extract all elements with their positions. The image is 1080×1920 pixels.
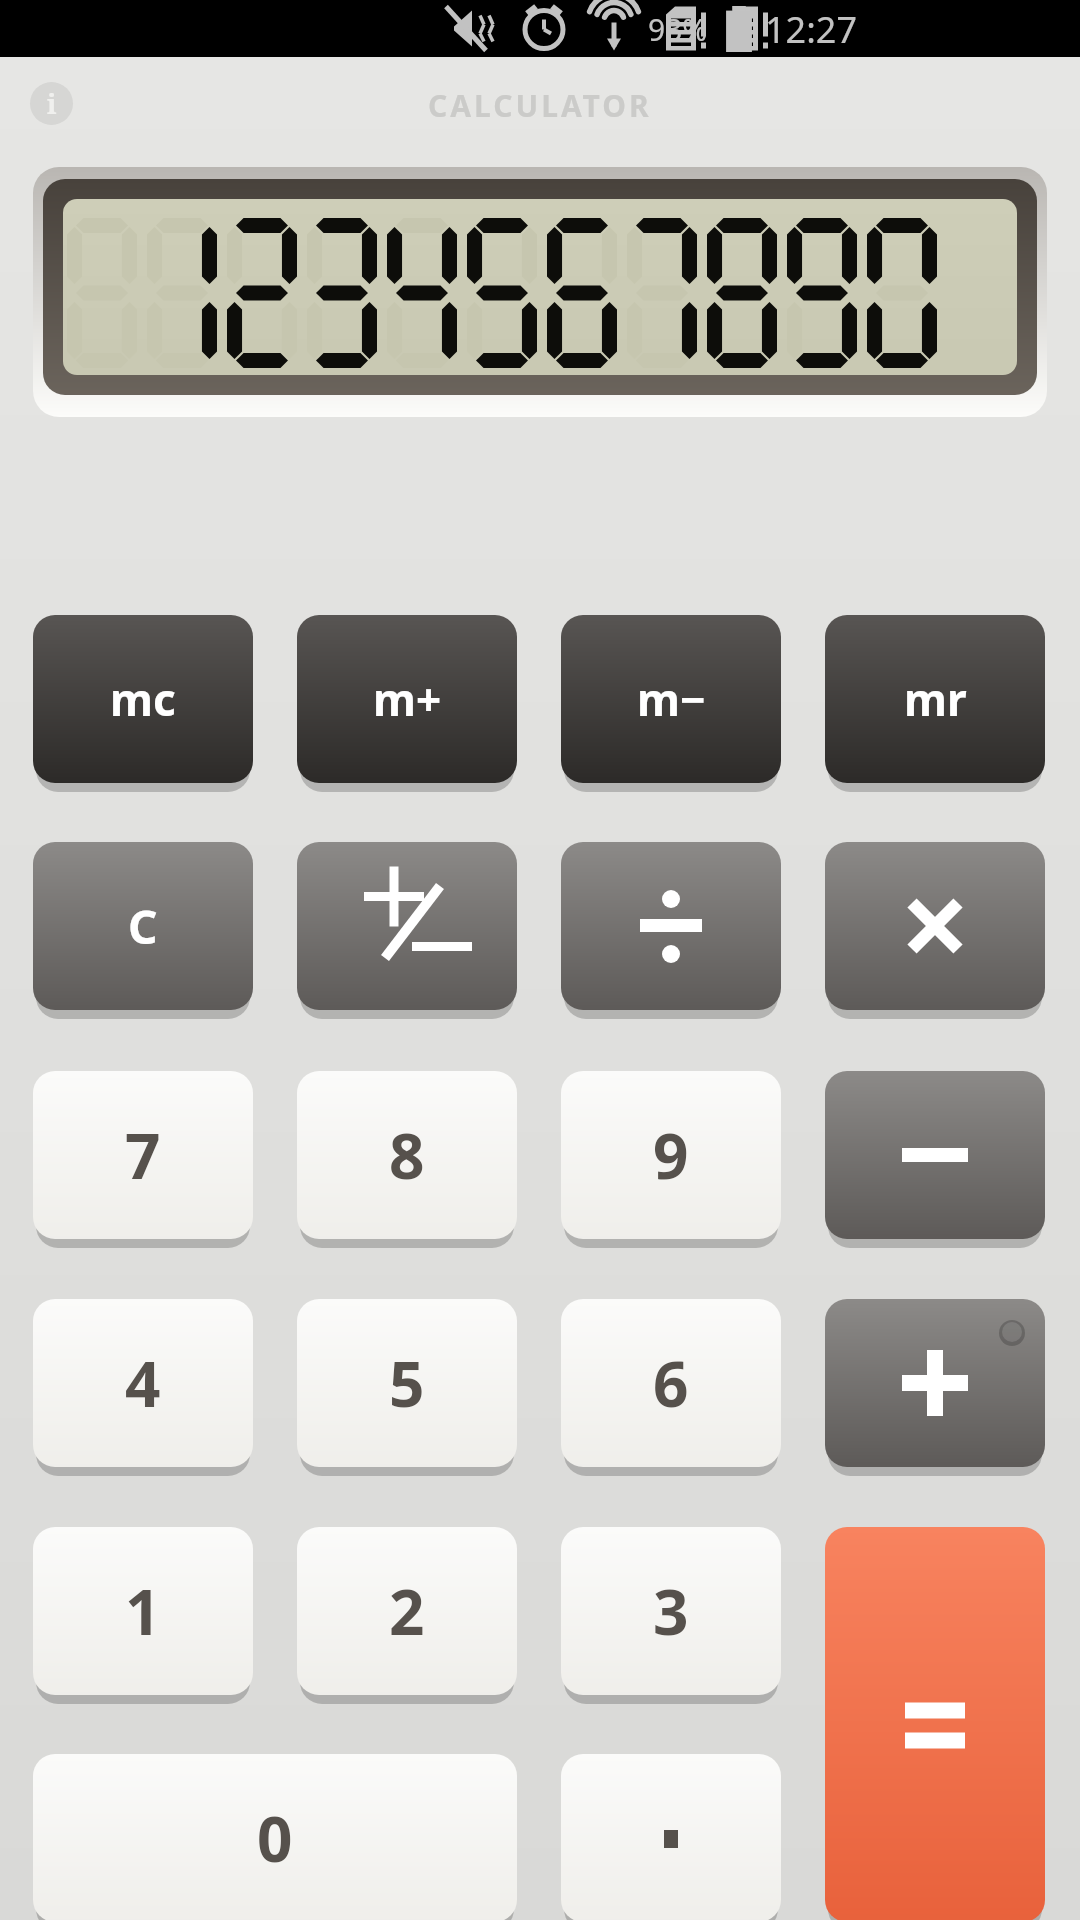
button[interactable]: Equals (825, 1527, 1045, 1920)
button[interactable]: 0 (33, 1754, 517, 1920)
staticText: 5 (389, 1341, 425, 1425)
button[interactable]: Multiply (825, 842, 1045, 1014)
staticText: mc (110, 669, 176, 729)
button[interactable]: Minus (825, 1071, 1045, 1243)
staticText: 6 (653, 1341, 689, 1425)
staticText: m+ (373, 669, 442, 729)
button[interactable]: 9 (561, 1071, 781, 1243)
staticText: 2 (389, 1569, 425, 1653)
staticText: 7 (125, 1113, 161, 1197)
staticText: 8 (389, 1113, 425, 1197)
button[interactable]: Plus minus (297, 842, 517, 1014)
button[interactable]: 3 (561, 1527, 781, 1699)
button[interactable]: 6 (561, 1299, 781, 1471)
staticText: 93% (648, 9, 708, 50)
button[interactable]: Decimal point (561, 1754, 781, 1920)
button[interactable]: 2 (297, 1527, 517, 1699)
button[interactable]: 5 (297, 1299, 517, 1471)
button[interactable]: m+ (297, 615, 517, 787)
button[interactable]: Info (30, 82, 73, 125)
button[interactable]: 1 (33, 1527, 253, 1699)
staticText: 12:27 (765, 5, 858, 54)
button[interactable]: 4 (33, 1299, 253, 1471)
staticText: 1 (125, 1569, 161, 1653)
button[interactable]: Divide (561, 842, 781, 1014)
button[interactable]: 7 (33, 1071, 253, 1243)
staticText: mr (904, 669, 967, 729)
staticText: i (47, 85, 57, 122)
button[interactable]: C (33, 842, 253, 1014)
staticText: 3 (653, 1569, 689, 1653)
button[interactable]: mc (33, 615, 253, 787)
staticText: 9 (653, 1113, 689, 1197)
staticText: m− (637, 669, 706, 729)
button[interactable]: m− (561, 615, 781, 787)
button[interactable]: 8 (297, 1071, 517, 1243)
button[interactable]: Plus (825, 1299, 1045, 1471)
staticText: C (128, 895, 158, 958)
staticText: CALCULATOR (428, 85, 652, 126)
staticText: 4 (125, 1341, 161, 1425)
staticText: 0 (257, 1796, 293, 1880)
button[interactable]: mr (825, 615, 1045, 787)
